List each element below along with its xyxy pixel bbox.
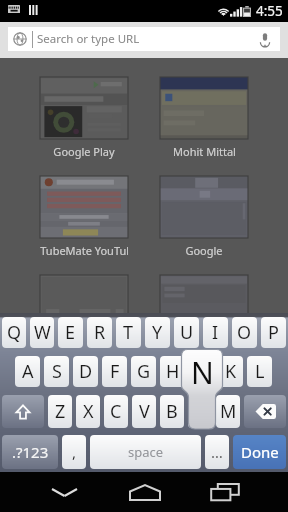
button[interactable]: .?123	[2, 435, 58, 469]
staticText: E	[65, 320, 76, 345]
button[interactable]: P	[261, 317, 286, 348]
button[interactable]: ,	[62, 435, 86, 469]
staticText: H	[166, 359, 180, 384]
button[interactable]: E	[58, 317, 83, 348]
button[interactable]: O	[232, 317, 257, 348]
button[interactable]: Mohit Mittal	[160, 77, 248, 163]
button[interactable]: Shift	[2, 395, 44, 428]
staticText: M	[220, 399, 237, 424]
button[interactable]: R	[87, 317, 112, 348]
staticText: Google Play	[53, 144, 115, 159]
button[interactable]: Recent apps	[200, 472, 250, 512]
staticText: A	[22, 359, 34, 384]
staticText: ,	[72, 442, 77, 462]
staticText: V	[139, 399, 150, 424]
button[interactable]: C	[104, 395, 128, 428]
staticText: U	[180, 320, 194, 345]
staticText: G	[137, 359, 151, 384]
staticText: W	[34, 320, 51, 345]
button[interactable]: W	[30, 317, 54, 348]
button[interactable]: J	[189, 356, 214, 387]
button[interactable]: Q	[2, 317, 26, 348]
button[interactable]: L	[247, 356, 272, 387]
button[interactable]: H	[160, 356, 185, 387]
button[interactable]: Z	[48, 395, 72, 428]
staticText: T	[123, 320, 134, 345]
button[interactable]: Voice search	[256, 30, 274, 48]
staticText: K	[225, 359, 237, 384]
button[interactable]: A	[15, 356, 40, 387]
button[interactable]: Done	[233, 435, 286, 469]
button[interactable]: Search or type URL	[8, 27, 280, 51]
button[interactable]: F	[102, 356, 127, 387]
staticText: Y	[152, 320, 163, 345]
button[interactable]: T	[116, 317, 141, 348]
button[interactable]: space	[90, 435, 201, 469]
button[interactable]: TubeMate YouTub…	[40, 176, 128, 262]
staticText: L	[255, 359, 265, 384]
staticText: Search or type URL	[37, 31, 140, 47]
staticText: P	[268, 320, 279, 345]
staticText: TubeMate YouTub…	[40, 243, 128, 258]
staticText: Mohit Mittal	[173, 144, 236, 159]
staticText: space	[128, 443, 164, 461]
button[interactable]: U	[174, 317, 199, 348]
button[interactable]: K	[218, 356, 243, 387]
staticText: Q	[7, 320, 22, 345]
staticText: X	[83, 399, 94, 424]
staticText: I	[212, 320, 219, 345]
staticText: C	[110, 399, 122, 424]
staticText: Google	[185, 243, 223, 258]
button[interactable]: G	[131, 356, 156, 387]
button[interactable]: Google	[160, 176, 248, 262]
staticText: F	[110, 359, 120, 384]
staticText: .?123	[12, 442, 49, 462]
staticText: R	[94, 320, 106, 345]
button[interactable]: Backspace	[244, 395, 286, 428]
button[interactable]: V	[132, 395, 156, 428]
button[interactable]: I	[203, 317, 228, 348]
staticText: J	[199, 359, 204, 384]
button[interactable]: Hide keyboard	[40, 472, 89, 512]
staticText: D	[79, 359, 93, 384]
staticText: 4:55	[256, 2, 283, 20]
button[interactable]	[40, 275, 128, 361]
staticText: B	[166, 399, 178, 424]
button[interactable]: M	[216, 395, 240, 428]
staticText: S	[52, 359, 62, 384]
button[interactable]: N	[188, 395, 212, 428]
button[interactable]: …	[205, 435, 229, 469]
button[interactable]: X	[76, 395, 100, 428]
staticText: N	[191, 352, 214, 393]
staticText: O	[237, 320, 252, 345]
button[interactable]: B	[160, 395, 184, 428]
button[interactable]: S	[44, 356, 69, 387]
button[interactable]: Home	[120, 472, 169, 512]
staticText: Done	[241, 442, 279, 462]
staticText: Z	[55, 399, 66, 424]
button[interactable]	[160, 275, 248, 361]
button[interactable]: D	[73, 356, 98, 387]
button[interactable]: Y	[145, 317, 170, 348]
staticText: …	[211, 442, 223, 462]
button[interactable]: Google Play	[40, 77, 128, 163]
